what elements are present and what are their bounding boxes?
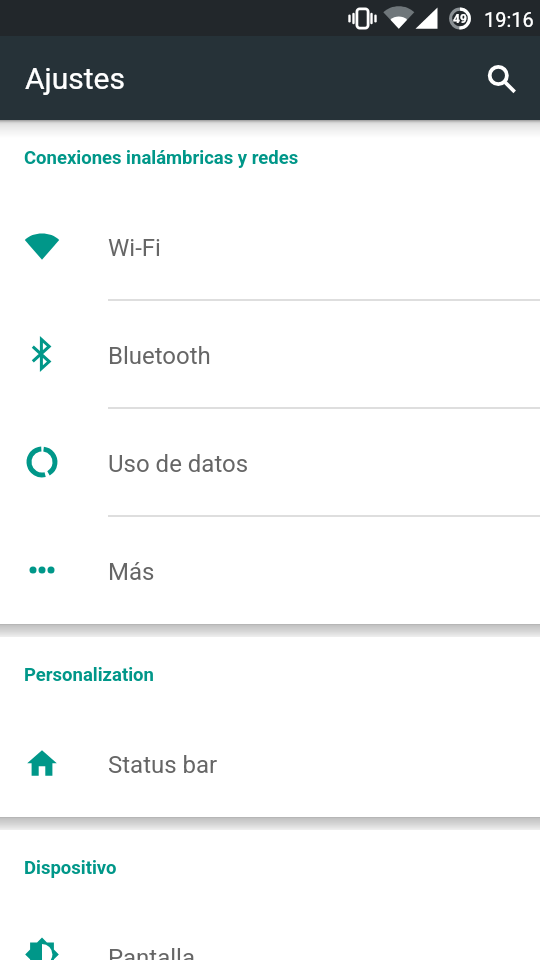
staticText: Más <box>108 558 155 586</box>
staticText: Personalization <box>24 664 154 686</box>
staticText: Uso de datos <box>108 450 249 478</box>
button[interactable]: Wi-Fi <box>0 192 540 300</box>
staticText: Dispositivo <box>24 857 117 879</box>
staticText: Pantalla <box>108 944 195 960</box>
staticText: Ajustes <box>25 61 125 96</box>
staticText: 19:16 <box>484 8 534 31</box>
button[interactable]: Uso de datos <box>0 408 540 516</box>
staticText: Bluetooth <box>108 342 211 370</box>
button[interactable]: Más <box>0 516 540 624</box>
staticText: 49 <box>453 12 467 26</box>
button[interactable]: Bluetooth <box>0 300 540 408</box>
staticText: Wi-Fi <box>108 234 161 262</box>
button[interactable]: Search <box>464 40 540 116</box>
button[interactable]: Pantalla <box>0 902 540 960</box>
button[interactable]: Status bar <box>0 709 540 817</box>
staticText: Conexiones inalámbricas y redes <box>24 147 299 169</box>
staticText: Status bar <box>108 751 218 779</box>
